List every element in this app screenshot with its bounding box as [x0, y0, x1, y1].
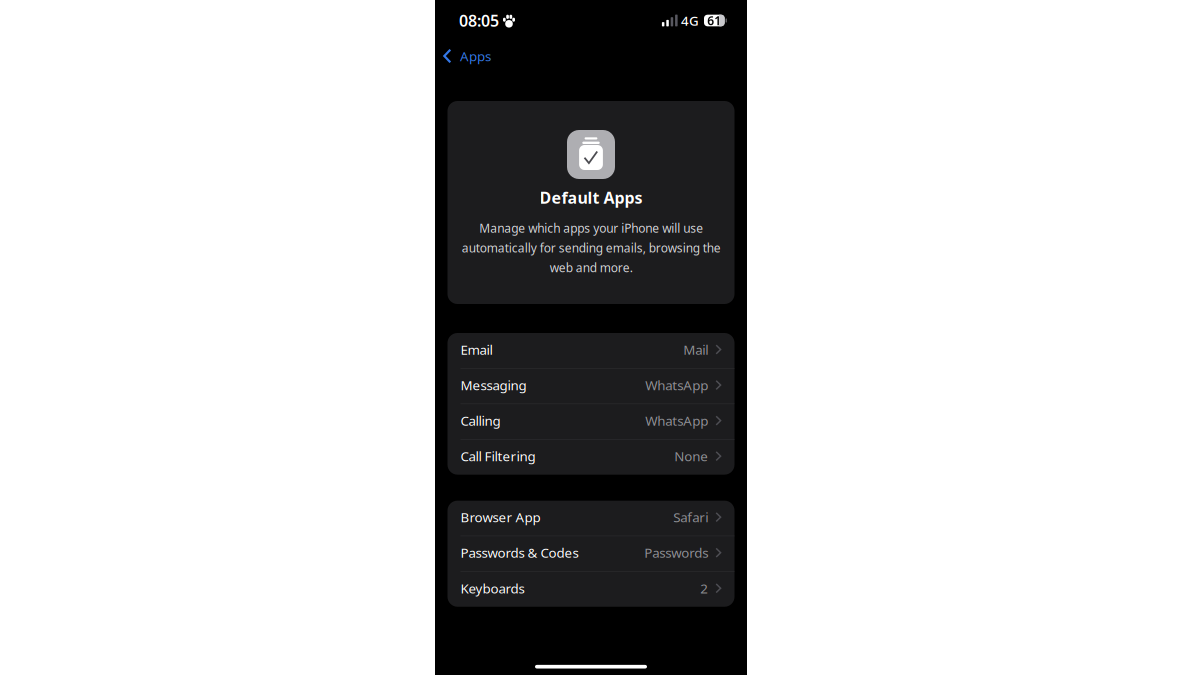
- staticText: Passwords & Codes: [460, 544, 578, 561]
- button[interactable]: Messaging: [447, 368, 734, 403]
- button[interactable]: Keyboards: [447, 572, 734, 607]
- staticText: Manage which apps your iPhone will use a…: [461, 220, 720, 276]
- button[interactable]: Apps: [436, 45, 498, 71]
- staticText: Passwords: [644, 544, 708, 561]
- staticText: Call Filtering: [460, 447, 535, 465]
- staticText: Keyboards: [460, 579, 524, 597]
- staticText: 4G: [681, 12, 699, 29]
- staticText: 2: [700, 579, 708, 597]
- staticText: WhatsApp: [645, 412, 708, 429]
- staticText: Apps: [460, 47, 491, 65]
- button[interactable]: Calling: [447, 404, 734, 439]
- staticText: Default Apps: [539, 187, 642, 208]
- staticText: Calling: [460, 412, 500, 429]
- staticText: Mail: [683, 341, 708, 358]
- staticText: Messaging: [460, 376, 526, 394]
- button[interactable]: Email: [447, 333, 734, 368]
- staticText: WhatsApp: [645, 376, 708, 394]
- staticText: Email: [460, 341, 492, 358]
- staticText: None: [674, 447, 708, 465]
- button[interactable]: Passwords & Codes: [447, 536, 734, 571]
- staticText: 08:05: [459, 10, 499, 31]
- staticText: Browser App: [460, 508, 540, 526]
- staticText: Safari: [673, 508, 708, 526]
- button[interactable]: Call Filtering: [447, 440, 734, 475]
- button[interactable]: Browser App: [447, 501, 734, 536]
- staticText: 61: [707, 12, 721, 28]
